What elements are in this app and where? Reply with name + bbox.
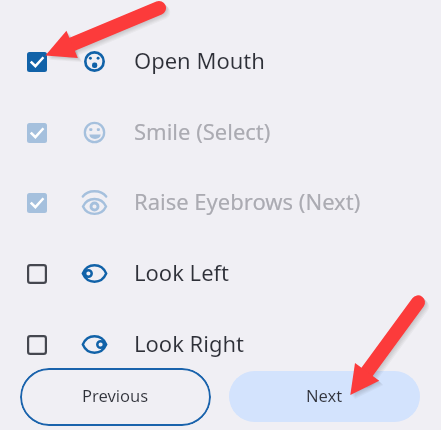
staticText: Smile (Select) bbox=[134, 116, 271, 146]
other: Open Mouth, checked bbox=[27, 52, 47, 72]
staticText: Previous bbox=[82, 384, 149, 406]
button[interactable]: Look Right, unchecked bbox=[0, 309, 441, 380]
button[interactable]: Next bbox=[229, 371, 420, 422]
other: Raise Eyebrows (Next), checked bbox=[27, 193, 47, 213]
button[interactable]: Look Left, unchecked bbox=[0, 238, 441, 309]
staticText: Look Right bbox=[134, 328, 245, 358]
other: Smile (Select), checked bbox=[27, 123, 47, 143]
staticText: Look Left bbox=[134, 257, 230, 287]
staticText: Next bbox=[306, 384, 343, 406]
button[interactable]: Open Mouth, checked bbox=[0, 26, 441, 97]
other: Look Right, unchecked bbox=[27, 335, 47, 355]
button[interactable]: Raise Eyebrows (Next), checked bbox=[0, 167, 441, 238]
staticText: Open Mouth bbox=[134, 45, 265, 75]
other: Open Mouth bbox=[82, 49, 107, 74]
other: Look Right bbox=[82, 332, 107, 357]
button[interactable]: Smile (Select), checked bbox=[0, 97, 441, 168]
other: Look Left bbox=[82, 261, 107, 286]
button[interactable]: Previous bbox=[20, 368, 211, 426]
other: Look Left, unchecked bbox=[27, 264, 47, 284]
other: Raise Eyebrows (Next) bbox=[82, 190, 107, 215]
other: Smile (Select) bbox=[82, 120, 107, 145]
staticText: Raise Eyebrows (Next) bbox=[134, 186, 361, 216]
